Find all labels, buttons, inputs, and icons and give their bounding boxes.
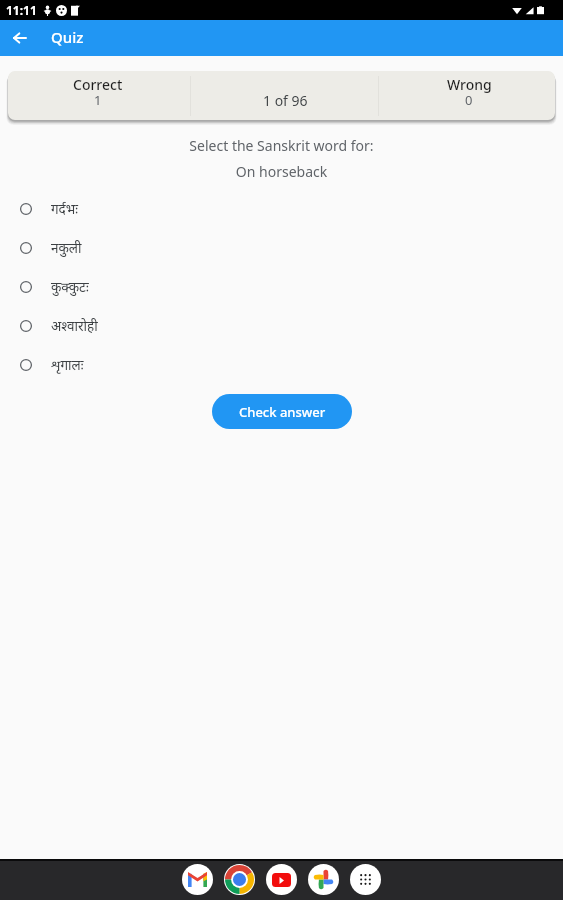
button[interactable]: All apps (350, 864, 381, 895)
staticText: On horseback (0, 162, 563, 181)
button[interactable]: अश्वारोही (0, 306, 563, 345)
button[interactable]: Photos (308, 864, 339, 895)
staticText: Correct (73, 75, 123, 94)
staticText: कुक्कुटः (51, 278, 89, 296)
staticText: Select the Sanskrit word for: (0, 136, 563, 155)
button[interactable]: शृगालः (0, 345, 563, 384)
button[interactable]: Check answer (212, 394, 352, 429)
button[interactable]: नकुली (0, 228, 563, 267)
staticText: शृगालः (51, 356, 84, 374)
staticText: गर्दभः (51, 200, 78, 218)
staticText: Check answer (239, 403, 326, 421)
staticText: 1 of 96 (263, 91, 308, 110)
button[interactable]: गर्दभः (0, 189, 563, 228)
button[interactable]: Chrome (224, 864, 255, 895)
button[interactable]: Back (0, 20, 40, 56)
button[interactable]: YouTube (266, 864, 297, 895)
staticText: 1 (94, 91, 102, 109)
staticText: Quiz (51, 27, 84, 47)
staticText: नकुली (51, 239, 82, 257)
staticText: 0 (465, 91, 473, 109)
button[interactable]: कुक्कुटः (0, 267, 563, 306)
button[interactable]: Gmail (182, 864, 213, 895)
staticText: 11:11 (6, 2, 37, 18)
staticText: अश्वारोही (51, 317, 98, 335)
staticText: Wrong (447, 75, 492, 94)
